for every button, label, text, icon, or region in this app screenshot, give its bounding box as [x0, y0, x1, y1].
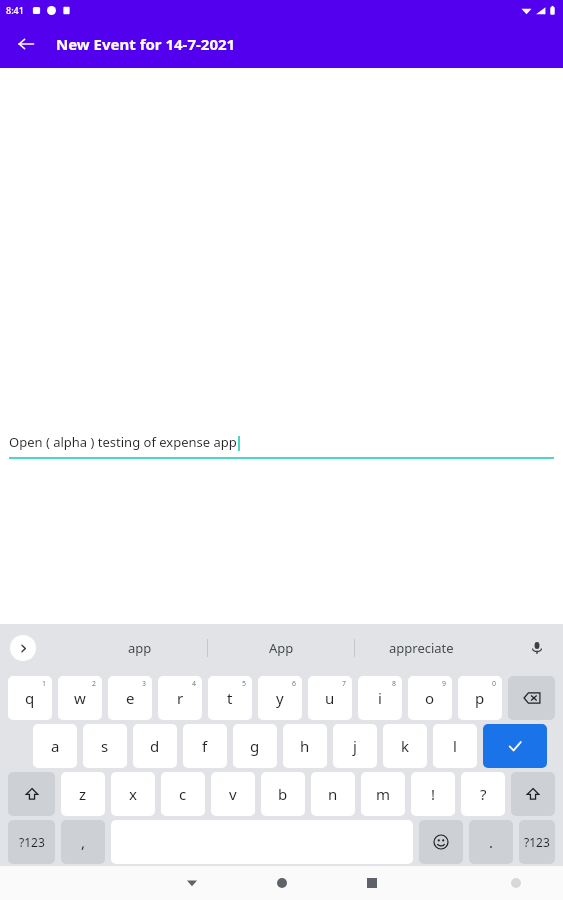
staticText: 2 — [92, 679, 97, 689]
button[interactable]: x — [111, 772, 155, 816]
staticText: 3 — [142, 679, 147, 689]
staticText: g — [250, 736, 260, 756]
staticText: 4 — [192, 679, 197, 689]
staticText: . — [489, 832, 494, 852]
staticText: q — [25, 688, 35, 708]
staticText: o — [425, 688, 435, 708]
staticText: 8 — [392, 679, 397, 689]
staticText: p — [475, 688, 485, 708]
staticText: appreciate — [389, 639, 454, 657]
button[interactable]: f — [183, 724, 227, 768]
button[interactable]: App — [246, 624, 316, 672]
button[interactable]: Back — [10, 28, 42, 60]
staticText: 0 — [492, 679, 497, 689]
staticText: a — [51, 736, 60, 756]
button[interactable]: u — [308, 676, 352, 720]
button[interactable]: Home — [267, 868, 297, 898]
staticText: r — [177, 688, 184, 708]
staticText: b — [278, 784, 288, 804]
staticText: k — [401, 736, 410, 756]
staticText: s — [101, 736, 109, 756]
staticText: l — [453, 736, 457, 756]
button[interactable]: ! — [411, 772, 455, 816]
staticText: , — [81, 832, 86, 852]
staticText: h — [300, 736, 310, 756]
button[interactable]: z — [61, 772, 105, 816]
staticText: 9 — [442, 679, 447, 689]
button[interactable]: Switch keyboard — [503, 870, 529, 896]
button[interactable]: y — [258, 676, 302, 720]
button[interactable]: w — [58, 676, 102, 720]
staticText: n — [328, 784, 338, 804]
button[interactable]: a — [33, 724, 77, 768]
button[interactable]: g — [233, 724, 277, 768]
button[interactable]: app — [105, 624, 175, 672]
button[interactable]: ?123 — [519, 820, 555, 864]
button[interactable]: d — [133, 724, 177, 768]
staticText: z — [79, 784, 87, 804]
button[interactable]: Enter — [483, 724, 547, 768]
button[interactable]: e — [108, 676, 152, 720]
button[interactable]: s — [83, 724, 127, 768]
button[interactable]: p — [458, 676, 502, 720]
staticText: 5 — [242, 679, 247, 689]
button[interactable]: i — [358, 676, 402, 720]
button[interactable]: v — [211, 772, 255, 816]
staticText: m — [376, 784, 391, 804]
button[interactable]: k — [383, 724, 427, 768]
button[interactable]: t — [208, 676, 252, 720]
staticText: app — [128, 639, 152, 657]
button[interactable]: c — [161, 772, 205, 816]
staticText: New Event for 14-7-2021 — [56, 34, 236, 54]
staticText: y — [276, 688, 284, 708]
button[interactable]: Shift — [511, 772, 555, 816]
staticText: ? — [480, 784, 487, 804]
button[interactable]: h — [283, 724, 327, 768]
button[interactable]: n — [311, 772, 355, 816]
button[interactable]: Backspace — [508, 676, 555, 720]
button[interactable]: Voice input — [523, 634, 551, 662]
staticText: Open ( alpha ) testing of expense app — [9, 433, 237, 451]
staticText: ?123 — [19, 834, 45, 850]
button[interactable]: l — [433, 724, 477, 768]
staticText: 1 — [42, 679, 47, 689]
button[interactable]: Back — [177, 868, 207, 898]
button[interactable]: Emoji — [419, 820, 463, 864]
staticText: f — [202, 736, 208, 756]
staticText: e — [126, 688, 135, 708]
staticText: 6 — [292, 679, 297, 689]
staticText: v — [229, 784, 237, 804]
button[interactable]: ?123 — [8, 820, 55, 864]
button[interactable]: , — [61, 820, 105, 864]
button[interactable]: ? — [461, 772, 505, 816]
button[interactable]: r — [158, 676, 202, 720]
staticText: App — [269, 639, 294, 657]
button[interactable]: q — [8, 676, 52, 720]
button[interactable]: m — [361, 772, 405, 816]
button[interactable]: Shift — [8, 772, 55, 816]
staticText: i — [378, 688, 382, 708]
staticText: w — [74, 688, 86, 708]
button[interactable]: o — [408, 676, 452, 720]
button[interactable]: . — [469, 820, 513, 864]
button[interactable]: b — [261, 772, 305, 816]
staticText: 7 — [342, 679, 347, 689]
staticText: ?123 — [524, 834, 550, 850]
staticText: c — [179, 784, 187, 804]
button[interactable]: appreciate — [371, 624, 471, 672]
staticText: ! — [431, 784, 436, 804]
staticText: 8:41 — [6, 4, 24, 16]
staticText: x — [129, 784, 137, 804]
button[interactable]: More suggestions — [10, 635, 36, 661]
button[interactable]: j — [333, 724, 377, 768]
staticText: t — [227, 688, 233, 708]
button[interactable]: Recents — [357, 868, 387, 898]
staticText: j — [353, 736, 357, 756]
staticText: u — [325, 688, 335, 708]
staticText: d — [150, 736, 160, 756]
